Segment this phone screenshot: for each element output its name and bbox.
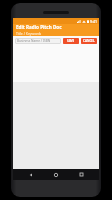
staticText: Title / Keywords: [16, 31, 42, 36]
button[interactable]: Business Name / ISBN: [15, 38, 61, 44]
button[interactable]: SAVE: [63, 38, 79, 44]
staticText: Edit Radio Pitch Doc: [16, 24, 62, 30]
staticText: CANCEL: [83, 39, 95, 43]
button[interactable]: Home: [49, 169, 63, 180]
button[interactable]: Back: [24, 169, 38, 180]
button[interactable]: Recent apps: [74, 169, 88, 180]
button[interactable]: Edit Radio Pitch Doc: [13, 24, 99, 36]
button[interactable]: CANCEL: [81, 38, 97, 44]
staticText: 9:41: [90, 19, 97, 24]
staticText: SAVE: [67, 39, 75, 43]
staticText: Business Name / ISBN: [17, 39, 51, 43]
